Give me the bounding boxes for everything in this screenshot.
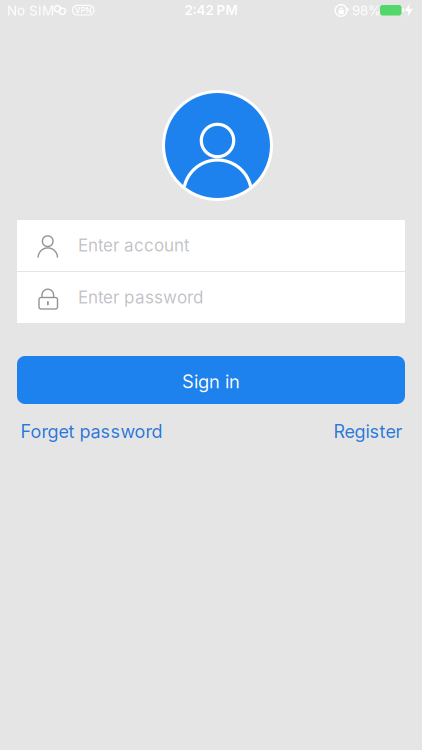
staticText: Enter password	[78, 287, 203, 308]
textField[interactable]: Enter account	[0, 0, 388, 51]
staticText: 2:42 PM	[184, 2, 237, 18]
button[interactable]: Register	[333, 420, 402, 442]
button[interactable]: Sign in	[17, 356, 405, 404]
textField[interactable]: Enter password	[0, 0, 388, 51]
staticText: Sign in	[182, 370, 240, 393]
staticText: No SIM	[7, 2, 54, 19]
staticText: Enter account	[78, 235, 190, 256]
staticText: Register	[333, 420, 402, 442]
staticText: VPN	[75, 5, 92, 15]
button[interactable]: Forget password	[20, 420, 162, 442]
staticText: 98%	[352, 2, 381, 19]
staticText: Forget password	[20, 420, 162, 442]
